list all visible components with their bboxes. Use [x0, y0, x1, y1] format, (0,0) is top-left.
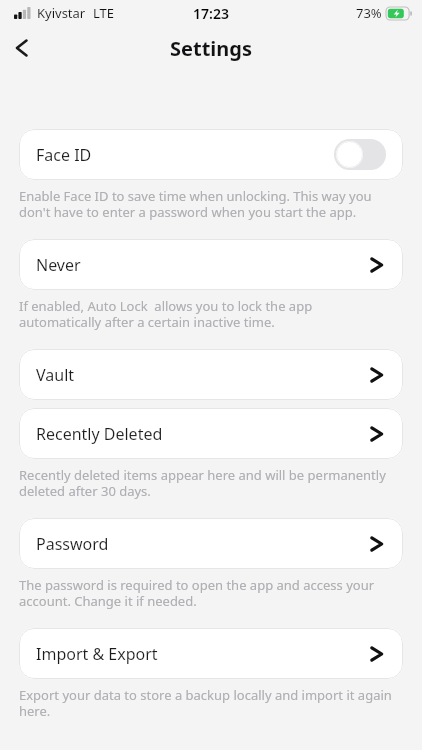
staticText: Password: [36, 533, 109, 555]
button[interactable]: Face ID toggle: [334, 139, 386, 170]
staticText: Recently deleted items appear here and w…: [19, 466, 392, 499]
staticText: Recently Deleted: [36, 423, 163, 445]
staticText: Import & Export: [36, 643, 158, 665]
staticText: Settings: [170, 35, 252, 62]
button[interactable]: Vault: [19, 349, 403, 400]
staticText: Vault: [36, 364, 75, 386]
staticText: Export your data to store a backup local…: [19, 686, 392, 719]
button[interactable]: Back: [0, 26, 44, 70]
button[interactable]: Recently Deleted: [19, 408, 403, 459]
button[interactable]: Import & Export: [19, 628, 403, 679]
staticText: Enable Face ID to save time when unlocki…: [19, 187, 392, 220]
staticText: The password is required to open the app…: [19, 576, 392, 609]
staticText: If enabled, Auto Lock allows you to lock…: [19, 297, 392, 330]
button[interactable]: Password: [19, 518, 403, 569]
staticText: 17:23: [193, 4, 229, 23]
staticText: Never: [36, 254, 81, 276]
button[interactable]: Face ID: [19, 129, 403, 180]
staticText: LTE: [93, 4, 115, 22]
staticText: Face ID: [36, 144, 92, 166]
staticText: 73%: [356, 4, 382, 22]
button[interactable]: Never: [19, 239, 403, 290]
staticText: Kyivstar: [37, 4, 86, 22]
